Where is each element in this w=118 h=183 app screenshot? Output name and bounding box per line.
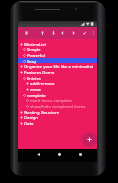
button[interactable]: Indent: [68, 27, 78, 39]
button[interactable]: Menu: [21, 27, 31, 39]
button[interactable]: Design: [18, 114, 97, 120]
button[interactable]: More options: [88, 27, 98, 39]
button[interactable]: Powerful: [18, 52, 97, 58]
button[interactable]: Back: [30, 149, 46, 160]
staticText: Sexy: [27, 58, 37, 64]
button[interactable]: Simple: [18, 46, 97, 52]
staticText: Design: [24, 114, 38, 120]
button[interactable]: Add item: [82, 132, 97, 147]
staticText: Entries: [27, 75, 41, 81]
button[interactable]: Data: [18, 120, 97, 126]
staticText: show/hide completed items: [30, 103, 86, 109]
button[interactable]: Move up: [37, 27, 47, 39]
button[interactable]: Move down: [48, 27, 58, 39]
button[interactable]: Mark complete: [79, 27, 89, 39]
button[interactable]: Home: [51, 149, 67, 160]
button[interactable]: complete: [18, 92, 97, 98]
staticText: add/remove: [30, 80, 55, 86]
button[interactable]: Recent apps: [72, 149, 88, 160]
staticText: move: [30, 86, 42, 92]
staticText: complete: [27, 92, 46, 98]
button[interactable]: Features Demo: [18, 69, 97, 75]
staticText: Data: [24, 120, 34, 126]
button[interactable]: Nesting Structure: [18, 109, 97, 115]
button[interactable]: Organize your life like a minimalist: [18, 63, 97, 69]
button[interactable]: Sexy: [18, 58, 97, 64]
button[interactable]: Outdent: [57, 27, 67, 39]
button[interactable]: add/remove: [18, 80, 97, 86]
staticText: mark items complete: [30, 97, 73, 103]
staticText: Powerful: [27, 52, 45, 58]
staticText: Features Demo: [24, 69, 55, 75]
button[interactable]: MinimaList: [18, 41, 97, 47]
button[interactable]: show/hide completed items: [18, 103, 97, 109]
button[interactable]: mark items complete: [18, 97, 97, 103]
button[interactable]: move: [18, 86, 97, 92]
button[interactable]: Entries: [18, 75, 97, 81]
staticText: MinimaList: [24, 41, 46, 47]
staticText: Organize your life like a minimalist: [24, 63, 94, 69]
staticText: Nesting Structure: [24, 109, 60, 115]
staticText: Simple: [27, 46, 41, 52]
